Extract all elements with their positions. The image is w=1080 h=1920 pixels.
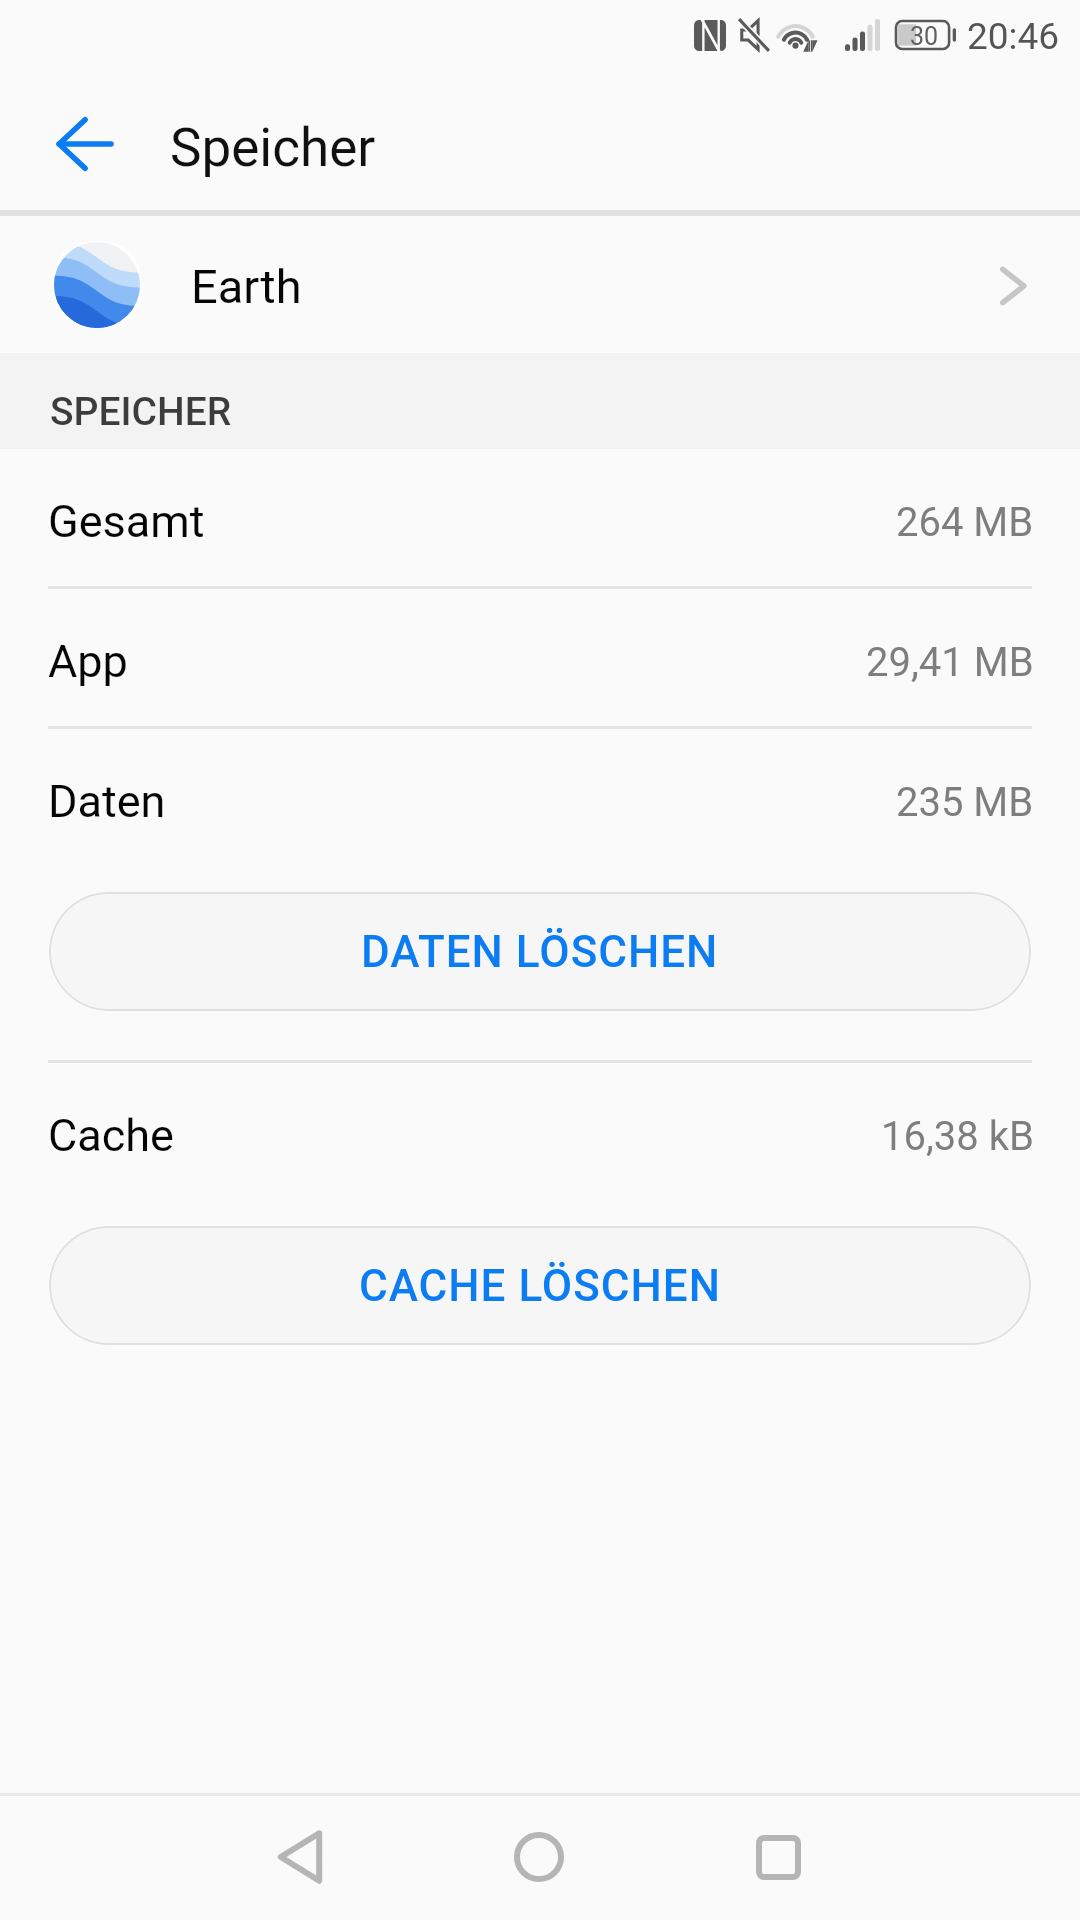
staticText: Daten [48, 775, 166, 828]
staticText: 235 MB [896, 779, 1034, 826]
button[interactable]: App [0, 589, 1080, 726]
button[interactable]: Gesamt [0, 449, 1080, 586]
button[interactable]: Back [240, 1797, 360, 1917]
button[interactable]: Recent apps [718, 1797, 838, 1917]
staticText: 16,38 kB [881, 1113, 1034, 1160]
staticText: 264 MB [896, 499, 1034, 546]
button[interactable]: Earth [0, 216, 1080, 353]
staticText: Speicher [170, 117, 376, 179]
staticText: 20:46 [967, 15, 1060, 58]
button[interactable]: CACHE LÖSCHEN [49, 1226, 1031, 1345]
staticText: SPEICHER [50, 389, 232, 435]
button[interactable]: Home [479, 1797, 599, 1917]
staticText: DATEN LÖSCHEN [361, 926, 719, 978]
staticText: Earth [191, 259, 302, 314]
staticText: Gesamt [48, 495, 205, 548]
button[interactable]: Back [26, 89, 136, 199]
staticText: 29,41 MB [866, 639, 1034, 686]
staticText: CACHE LÖSCHEN [359, 1260, 721, 1312]
staticText: Cache [48, 1109, 174, 1162]
button[interactable]: Daten [0, 729, 1080, 866]
staticText: App [48, 635, 128, 688]
button[interactable]: Cache [0, 1063, 1080, 1200]
staticText: 30 [910, 22, 939, 50]
button[interactable]: DATEN LÖSCHEN [49, 892, 1031, 1011]
